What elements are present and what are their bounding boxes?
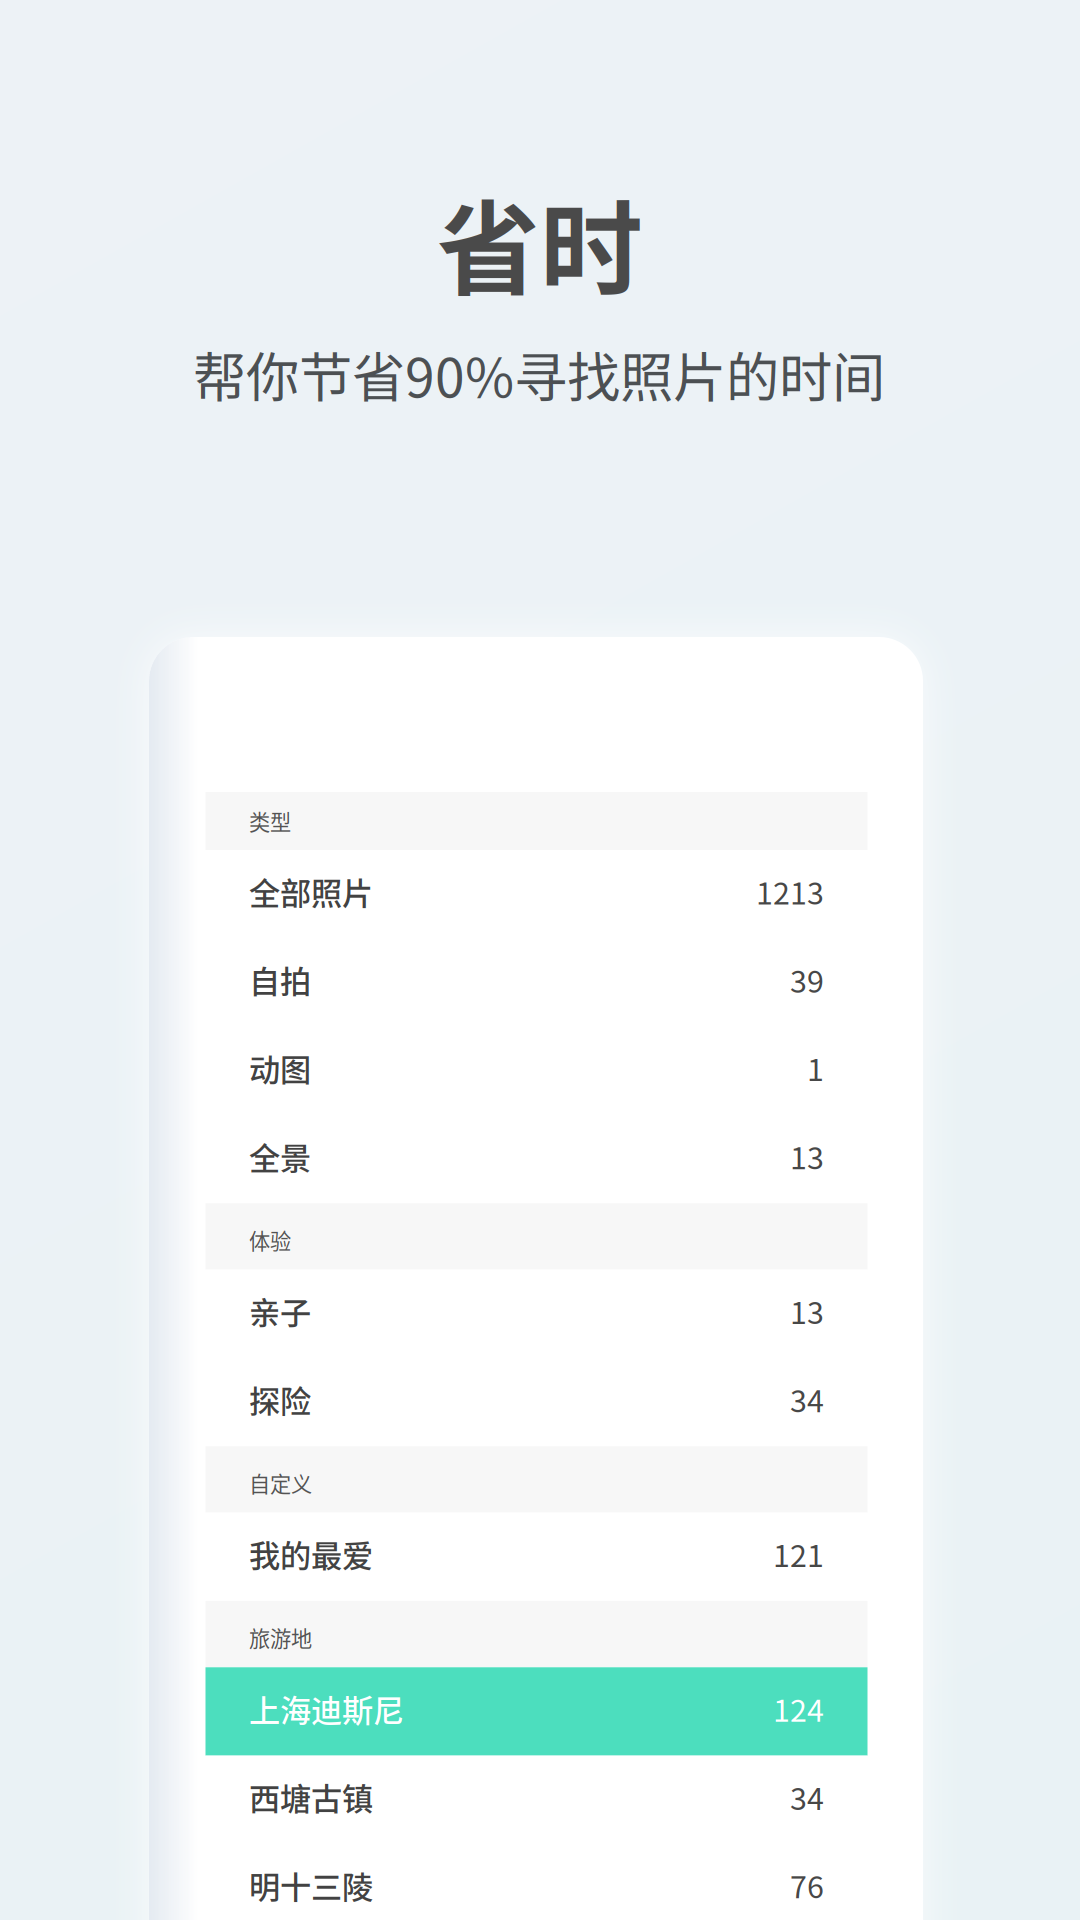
button[interactable]: 上海迪斯尼 [205, 1667, 867, 1756]
button[interactable]: 自拍 [205, 938, 867, 1027]
staticText: 全部照片 [249, 869, 373, 914]
staticText: 亲子 [249, 1288, 311, 1333]
button[interactable]: 动图 [205, 1027, 867, 1115]
staticText: 1213 [756, 869, 824, 913]
staticText: 动图 [249, 1045, 311, 1090]
staticText: 121 [773, 1532, 824, 1576]
staticText: 探险 [249, 1376, 311, 1422]
button[interactable]: 全部照片 [205, 850, 867, 938]
staticText: 类型 [249, 806, 291, 836]
staticText: 34 [790, 1377, 824, 1421]
staticText: 西塘古镇 [249, 1774, 373, 1819]
button[interactable]: 我的最爱 [205, 1513, 867, 1601]
staticText: 我的最爱 [249, 1531, 373, 1576]
staticText: 自定义 [249, 1468, 312, 1498]
button[interactable]: 西塘古镇 [205, 1756, 867, 1844]
staticText: 39 [790, 957, 824, 1001]
staticText: 124 [773, 1686, 824, 1730]
staticText: 体验 [249, 1225, 291, 1255]
staticText: 帮你节省90%寻找照片的时间 [193, 335, 885, 413]
staticText: 76 [790, 1863, 824, 1907]
staticText: 自拍 [249, 957, 311, 1002]
button[interactable]: 明十三陵 [205, 1844, 867, 1920]
staticText: 13 [790, 1134, 824, 1178]
staticText: 34 [790, 1775, 824, 1819]
button[interactable]: 全景 [205, 1115, 867, 1203]
button[interactable]: 探险 [205, 1358, 867, 1446]
staticText: 1 [807, 1046, 824, 1090]
staticText: 13 [790, 1289, 824, 1333]
staticText: 旅游地 [249, 1622, 312, 1653]
staticText: 省时 [437, 168, 643, 316]
staticText: 明十三陵 [249, 1862, 373, 1908]
button[interactable]: 亲子 [205, 1270, 867, 1358]
staticText: 全景 [249, 1133, 311, 1179]
staticText: 上海迪斯尼 [249, 1686, 404, 1731]
